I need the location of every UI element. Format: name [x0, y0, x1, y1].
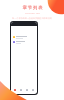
button[interactable]: Search: [25, 88, 29, 92]
button[interactable]: Library: [19, 88, 23, 92]
button[interactable]: [11, 35, 37, 39]
button[interactable]: Home: [13, 88, 17, 92]
staticText: 每一个章节都是一段崭新的旅程与故事开始: [12, 17, 52, 20]
staticText: 章 节 列 表: [22, 5, 43, 11]
button[interactable]: Profile: [31, 88, 35, 92]
staticText: CHAPTER LIST: [25, 12, 40, 15]
button[interactable]: [11, 40, 37, 44]
